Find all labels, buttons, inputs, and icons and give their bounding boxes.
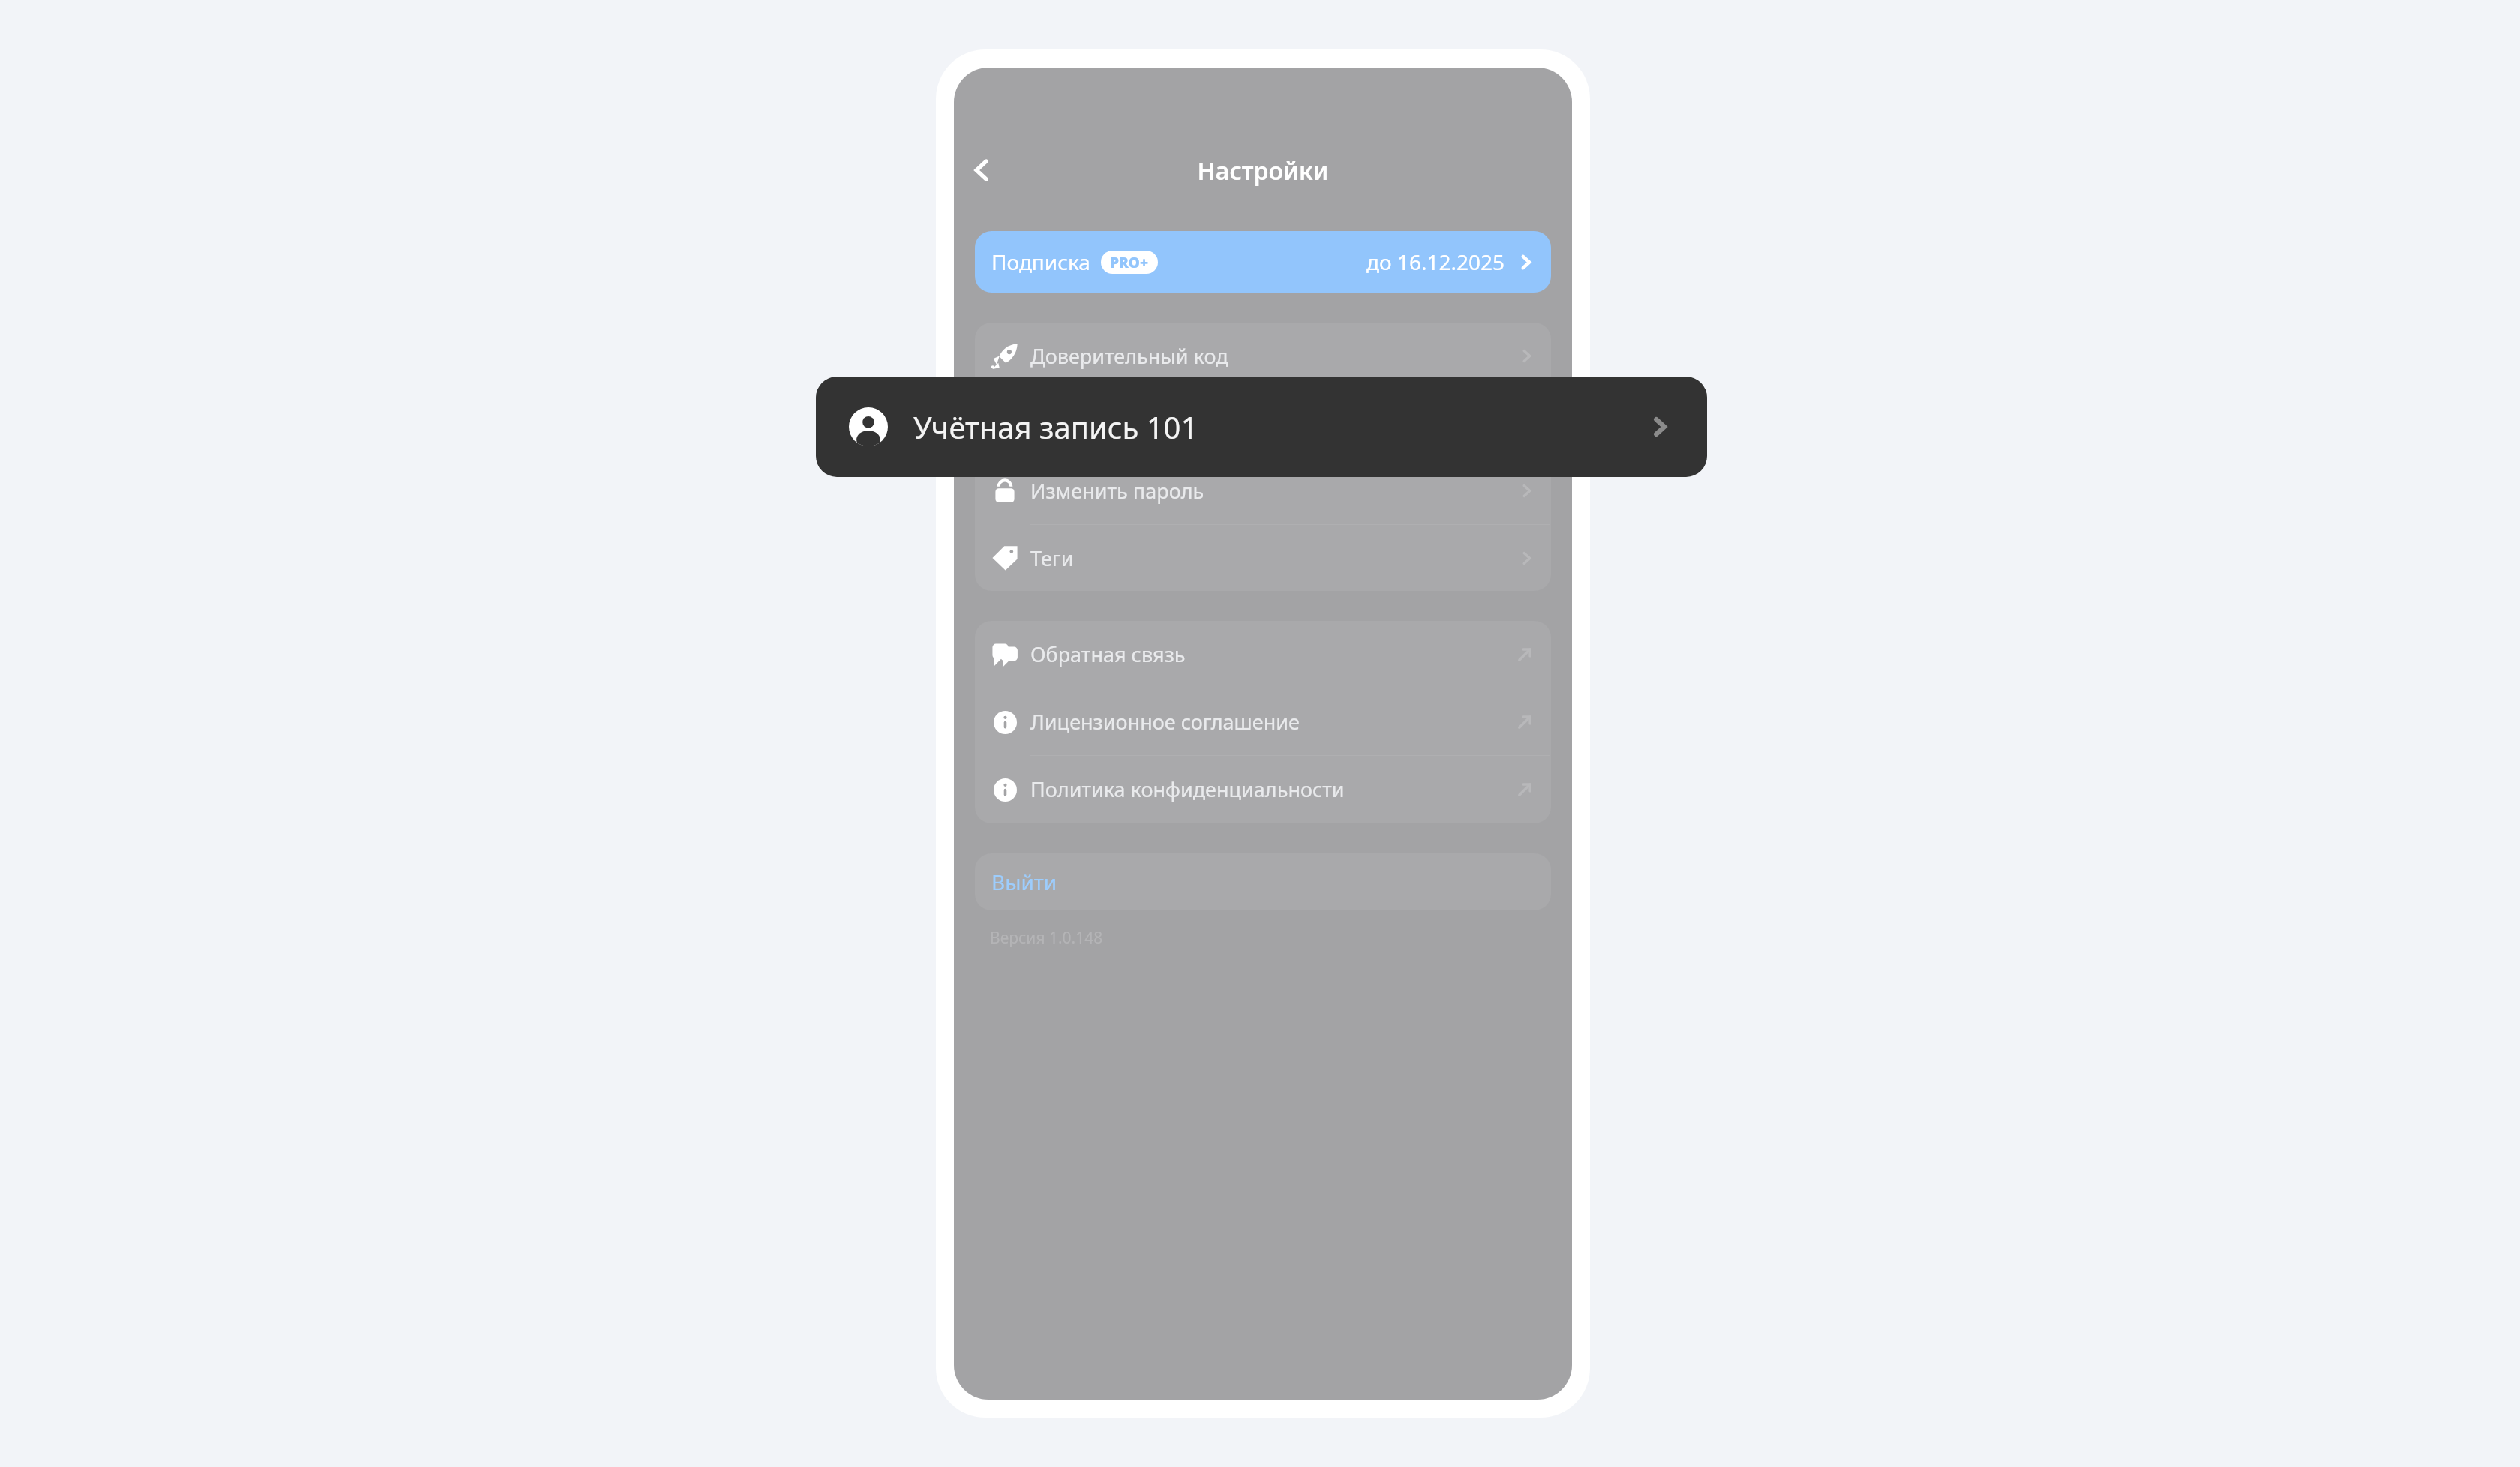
button[interactable]: Выйти xyxy=(975,853,1551,910)
staticText: Выйти xyxy=(991,868,1057,896)
staticText: Доверительный код xyxy=(1030,342,1228,370)
button[interactable]: Вход по отпечатку xyxy=(975,390,1551,457)
staticText: Версия 1.0.148 xyxy=(990,927,1103,949)
button[interactable]: Политика конфиденциальности xyxy=(975,756,1551,823)
button[interactable]: Обратная связь xyxy=(975,621,1551,688)
button[interactable]: Доверительный код xyxy=(975,322,1551,389)
staticText: до 16.12.2025 xyxy=(1366,247,1505,276)
staticText: Обратная связь xyxy=(1030,640,1186,668)
button[interactable]: Подписка xyxy=(975,231,1551,292)
staticText: Подписка xyxy=(991,247,1090,276)
staticText: Изменить пароль xyxy=(1030,477,1204,505)
staticText: Настройки xyxy=(954,154,1572,187)
button[interactable]: Изменить пароль xyxy=(975,457,1551,524)
button[interactable]: Теги xyxy=(975,525,1551,591)
staticText: Вход по отпечатку xyxy=(1030,409,1210,437)
button[interactable]: Лицензионное соглашение xyxy=(975,688,1551,755)
staticText: Теги xyxy=(1030,544,1074,572)
staticText: Лицензионное соглашение xyxy=(1030,708,1300,736)
button[interactable]: Back xyxy=(957,145,1006,195)
staticText: Учётная запись 101 xyxy=(913,406,1198,447)
staticText: PRO+ xyxy=(1110,253,1149,272)
button[interactable]: Учётная запись 101 xyxy=(816,376,1707,477)
staticText: Политика конфиденциальности xyxy=(1030,775,1345,803)
